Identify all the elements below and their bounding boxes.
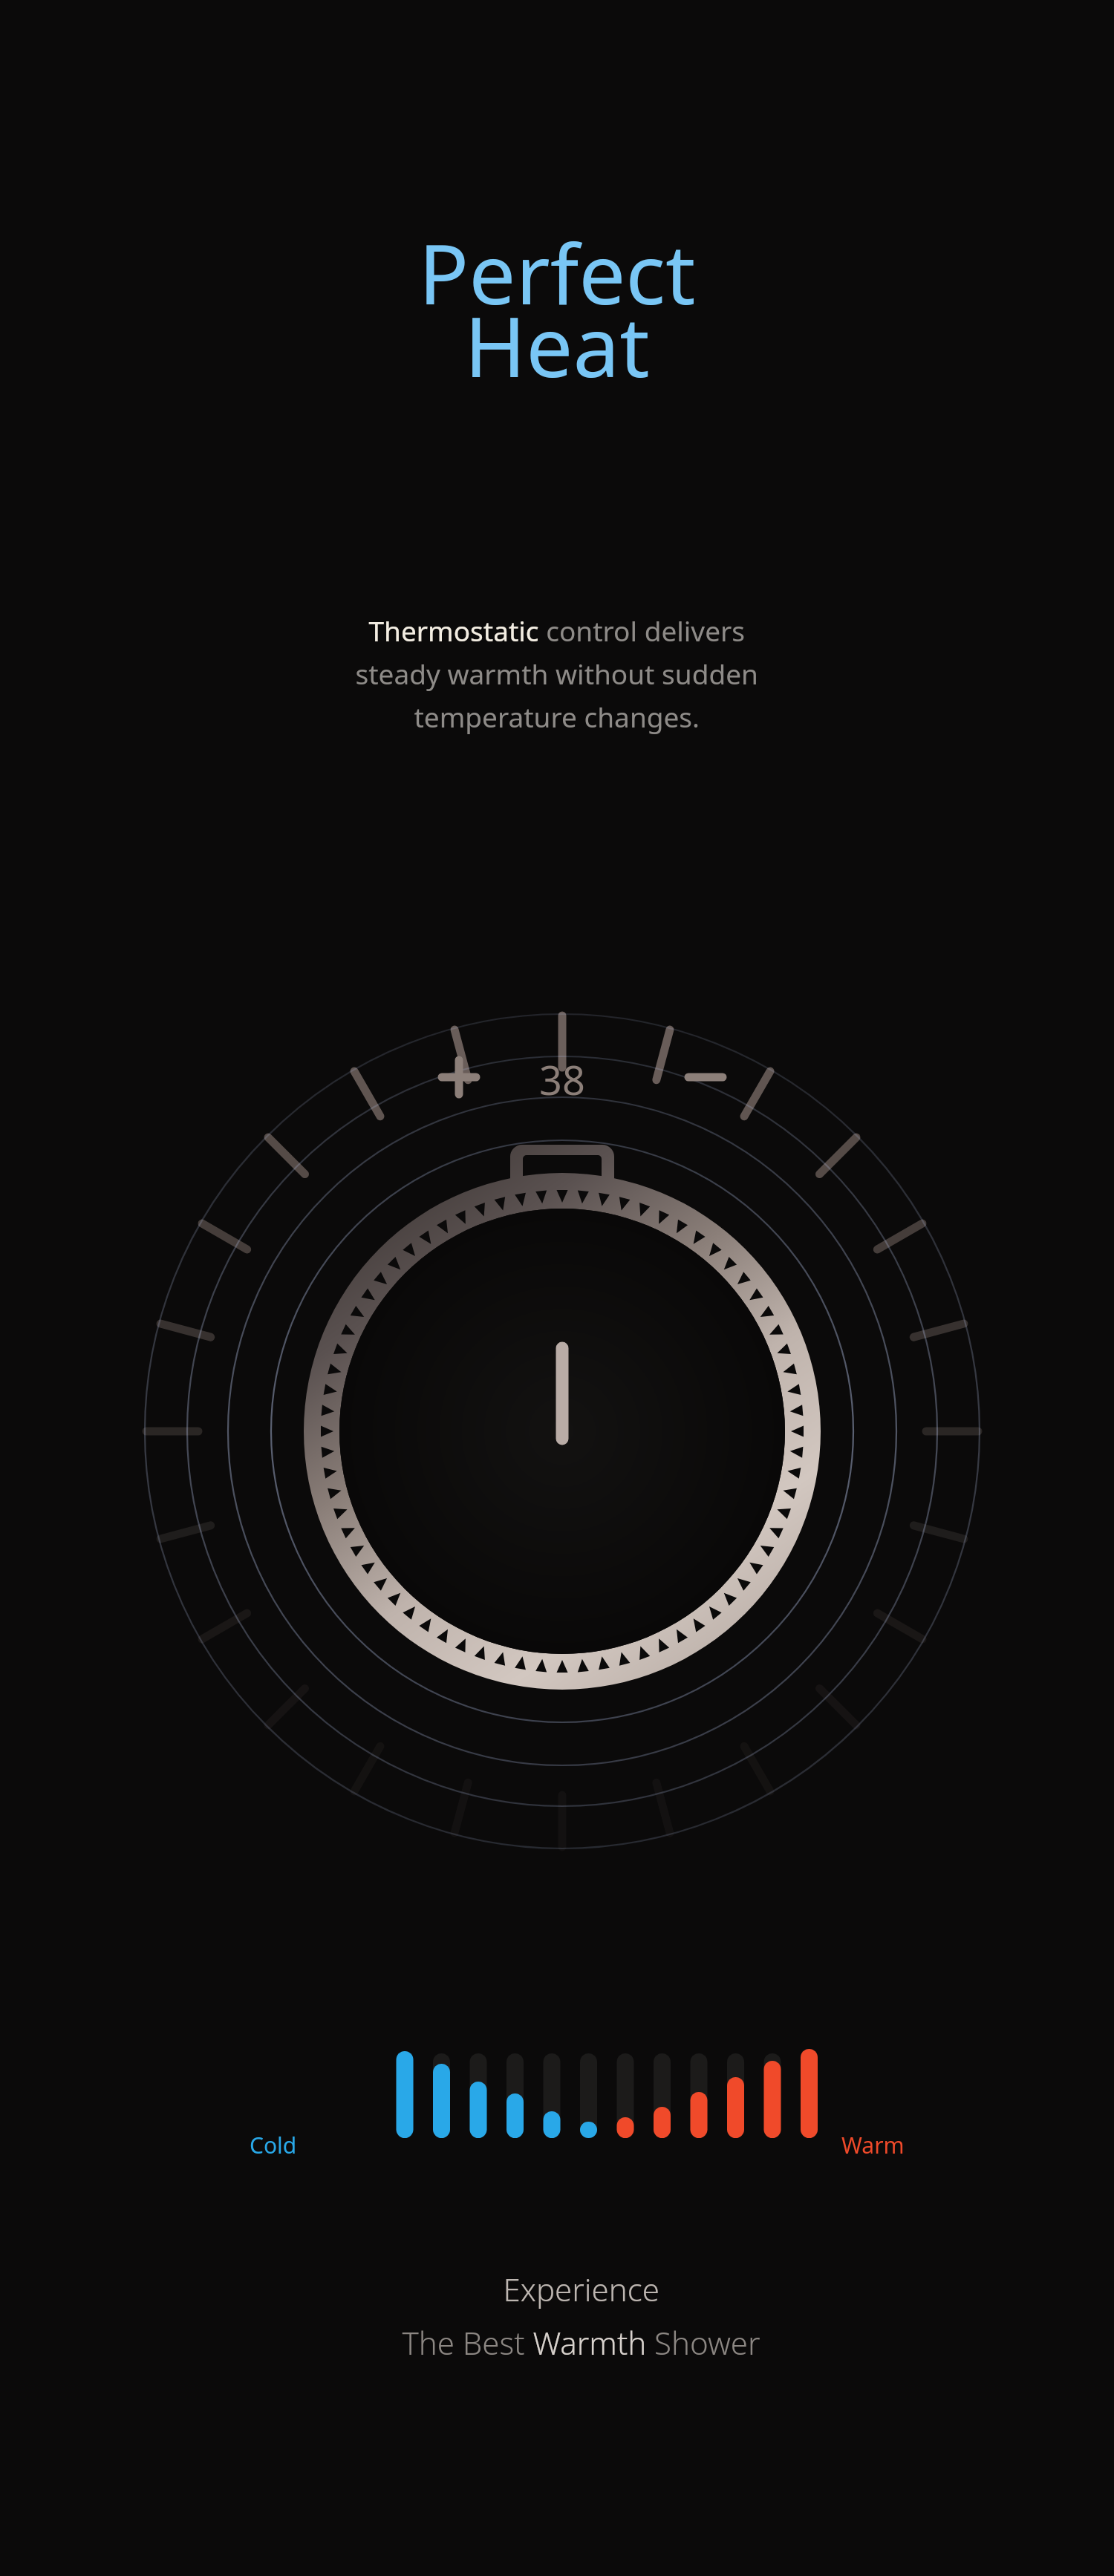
button[interactable]: Temperature dial <box>0 0 1114 2576</box>
